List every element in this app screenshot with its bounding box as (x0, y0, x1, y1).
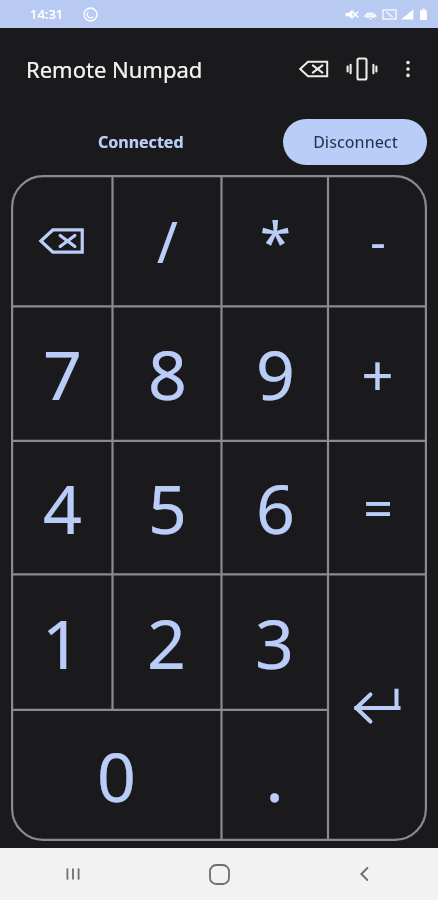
staticText: - (370, 208, 386, 273)
staticText: 9 (256, 327, 295, 420)
button[interactable]: . (221, 710, 328, 841)
staticText: Remote Numpad (26, 54, 203, 84)
button[interactable]: Vibration (338, 45, 386, 93)
button[interactable]: * (222, 175, 328, 306)
staticText: 3 (255, 596, 294, 689)
button[interactable]: Recents (0, 848, 146, 900)
button[interactable]: 0 (11, 710, 221, 841)
staticText: 8 (148, 327, 187, 420)
button[interactable]: - (328, 175, 427, 306)
button[interactable]: = (328, 441, 427, 574)
staticText: 4 (43, 461, 82, 554)
button[interactable]: More options (386, 47, 430, 91)
button[interactable]: + (328, 306, 427, 441)
button[interactable]: 4 (11, 441, 113, 574)
staticText: 1 (42, 596, 81, 689)
button[interactable]: 9 (222, 306, 328, 441)
staticText: 5 (148, 461, 187, 554)
staticText: 2 (147, 596, 186, 689)
button[interactable]: Back (292, 848, 438, 900)
staticText: 0 (97, 729, 136, 822)
button[interactable]: 3 (221, 574, 328, 710)
staticText: 7 (43, 327, 82, 420)
staticText: = (363, 472, 393, 543)
staticText: 14:31 (30, 5, 64, 23)
button[interactable]: Backspace (290, 45, 338, 93)
button[interactable]: / (113, 175, 222, 306)
button[interactable]: 8 (113, 306, 222, 441)
button[interactable]: 2 (112, 574, 221, 710)
button[interactable]: Disconnect (283, 119, 427, 165)
staticText: / (157, 203, 178, 279)
button[interactable]: 5 (113, 441, 222, 574)
staticText: Disconnect (313, 131, 398, 153)
staticText: Connected (98, 131, 184, 153)
staticText: * (260, 203, 291, 279)
staticText: 6 (256, 461, 295, 554)
button[interactable] (11, 175, 113, 306)
button[interactable]: 7 (11, 306, 113, 441)
staticText: . (265, 729, 284, 822)
button[interactable]: Home (146, 848, 292, 900)
button[interactable]: Enter (328, 574, 427, 841)
button[interactable]: 6 (222, 441, 328, 574)
button[interactable]: 1 (11, 574, 112, 710)
staticText: + (361, 336, 394, 412)
